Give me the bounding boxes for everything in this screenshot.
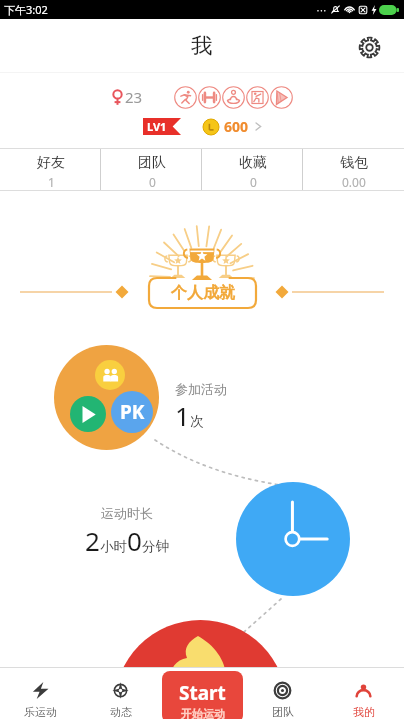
staticText: 小时 xyxy=(100,538,127,555)
staticText: 我的 xyxy=(353,705,375,719)
button[interactable]: 600 xyxy=(203,117,262,136)
staticText: 0.00 xyxy=(342,174,366,190)
button[interactable]: Badge 1 xyxy=(173,85,197,109)
staticText: 分钟 xyxy=(142,538,169,555)
staticText: 1 xyxy=(48,174,55,190)
staticText: 0 xyxy=(149,174,156,190)
button[interactable]: Level 1 xyxy=(143,118,181,135)
button[interactable]: 收藏 xyxy=(202,149,303,190)
button[interactable]: 团队 xyxy=(242,668,323,719)
staticText: 好友 xyxy=(37,154,65,172)
staticText: 收藏 xyxy=(239,154,267,172)
button[interactable]: Badge 3 xyxy=(221,85,245,109)
button[interactable]: 动态 xyxy=(80,668,161,719)
staticText: 钱包 xyxy=(340,154,368,172)
button[interactable]: 乐运动 xyxy=(0,668,80,719)
staticText: 下午3:02 xyxy=(4,2,48,17)
button[interactable]: Activities xyxy=(54,345,159,450)
staticText: 我 xyxy=(191,32,213,59)
staticText: 23 xyxy=(125,87,143,107)
staticText: 参加活动 xyxy=(175,381,227,397)
staticText: 运动时长 xyxy=(101,505,153,521)
staticText: 1 xyxy=(175,398,190,433)
button[interactable]: 我的 xyxy=(323,668,404,719)
button[interactable]: Badge 2 xyxy=(197,85,221,109)
staticText: 次 xyxy=(190,413,204,430)
button[interactable]: 好友 xyxy=(0,149,101,190)
staticText: 乐运动 xyxy=(24,705,57,719)
button[interactable]: 钱包 xyxy=(303,149,404,190)
staticText: 动态 xyxy=(110,705,132,719)
staticText: 团队 xyxy=(272,705,294,719)
button[interactable]: Start xyxy=(162,671,243,719)
staticText: 2 xyxy=(85,523,100,558)
staticText: 600 xyxy=(224,117,249,136)
staticText: 开始运动 xyxy=(181,707,225,719)
staticText: 0 xyxy=(250,174,257,190)
staticText: 团队 xyxy=(138,154,166,172)
button[interactable]: Badge 4 xyxy=(245,85,269,109)
staticText: LV1 xyxy=(147,119,167,134)
button[interactable]: Calories xyxy=(114,620,287,719)
button[interactable]: 团队 xyxy=(101,149,202,190)
staticText: 0 xyxy=(127,523,142,558)
staticText: PK xyxy=(120,399,145,425)
staticText: 个人成就 xyxy=(171,283,235,303)
staticText: Start xyxy=(179,680,226,706)
button[interactable]: Badge 5 xyxy=(269,85,293,109)
button[interactable]: Settings xyxy=(351,29,387,65)
button[interactable]: Duration xyxy=(236,482,350,596)
